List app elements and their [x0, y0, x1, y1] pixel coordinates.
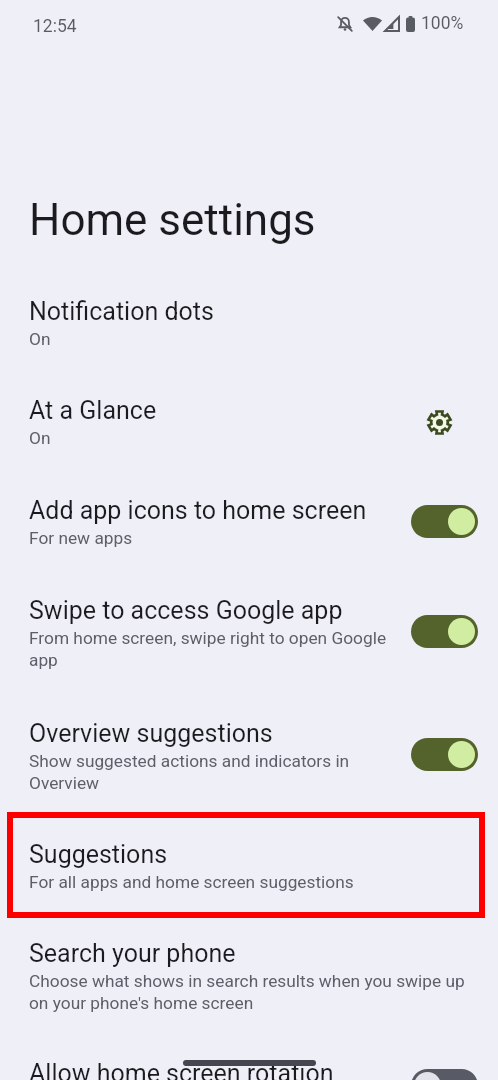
staticText: Show suggested actions and indicators in… [29, 750, 396, 794]
button[interactable]: Swipe to access Google app [0, 590, 498, 671]
button[interactable]: Allow home screen rotation [0, 1053, 498, 1080]
button[interactable]: Add app icons to home screen [0, 490, 498, 549]
staticText: Allow home screen rotation [29, 1053, 334, 1080]
staticText: On [29, 427, 51, 449]
button[interactable]: On [411, 505, 478, 538]
staticText: 100% [421, 13, 464, 34]
staticText: For new apps [29, 527, 133, 549]
staticText: Home settings [29, 194, 316, 246]
button[interactable]: At a Glance [0, 390, 498, 449]
button[interactable]: On [411, 738, 478, 771]
button[interactable]: At a Glance settings [427, 410, 452, 435]
staticText: Notification dots [29, 291, 214, 328]
button[interactable]: Search your phone [0, 933, 498, 1014]
staticText: Choose what shows in search results when… [29, 970, 471, 1014]
staticText: Suggestions [29, 834, 168, 871]
staticText: From home screen, swipe right to open Go… [29, 627, 396, 671]
staticText: 12:54 [33, 16, 77, 37]
staticText: At a Glance [29, 390, 157, 427]
staticText: Search your phone [29, 933, 236, 970]
button[interactable]: Suggestions [0, 834, 498, 893]
button[interactable]: Notification dots [0, 291, 498, 350]
button[interactable]: Off [411, 1069, 478, 1080]
staticText: On [29, 328, 51, 350]
button[interactable]: Overview suggestions [0, 713, 498, 794]
staticText: Overview suggestions [29, 713, 273, 750]
button[interactable]: On [411, 615, 478, 648]
staticText: Swipe to access Google app [29, 590, 343, 627]
staticText: For all apps and home screen suggestions [29, 871, 354, 893]
staticText: Add app icons to home screen [29, 490, 367, 527]
